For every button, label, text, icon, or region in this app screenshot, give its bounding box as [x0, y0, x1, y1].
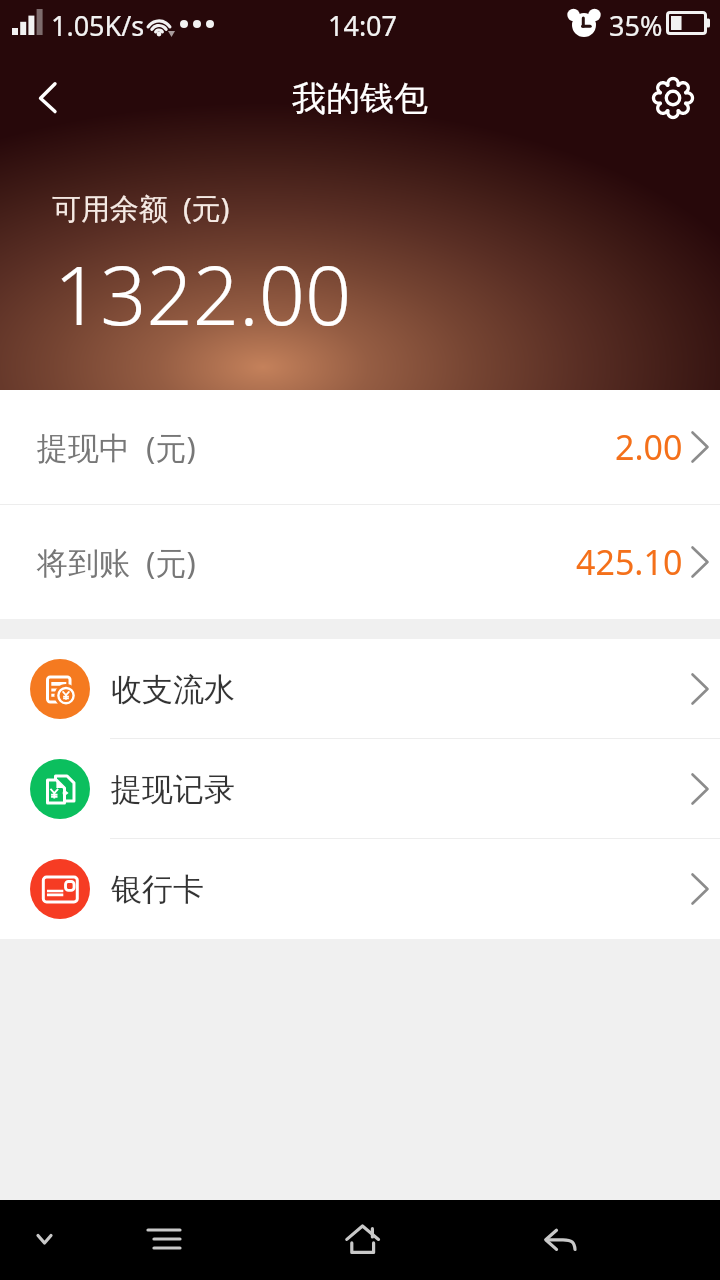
- button[interactable]: Back: [0, 58, 80, 138]
- staticText: 我的钱包: [292, 77, 428, 120]
- button[interactable]: Back: [520, 1200, 600, 1280]
- staticText: 2.00: [615, 424, 683, 470]
- staticText: 银行卡: [111, 870, 204, 909]
- staticText: 收支流水: [111, 670, 235, 709]
- button[interactable]: 将到账 (元): [0, 505, 720, 619]
- button[interactable]: 提现中 (元): [0, 390, 720, 504]
- button[interactable]: Recent apps: [124, 1200, 204, 1280]
- staticText: 425.10: [576, 539, 683, 585]
- button[interactable]: Home: [321, 1200, 401, 1280]
- staticText: 提现中 (元): [37, 426, 196, 468]
- staticText: 14:07: [328, 7, 398, 44]
- staticText: 可用余额 (元): [52, 188, 230, 228]
- staticText: 35%: [609, 7, 663, 44]
- staticText: 将到账 (元): [37, 541, 196, 583]
- staticText: 1322.00: [54, 238, 352, 348]
- button[interactable]: 收支流水: [0, 639, 720, 739]
- button[interactable]: Hide keyboard: [4, 1200, 84, 1280]
- button[interactable]: 提现记录: [0, 739, 720, 839]
- button[interactable]: Settings: [640, 58, 720, 138]
- staticText: 提现记录: [111, 770, 235, 809]
- staticText: 1.05K/s: [51, 7, 145, 44]
- button[interactable]: 银行卡: [0, 839, 720, 939]
